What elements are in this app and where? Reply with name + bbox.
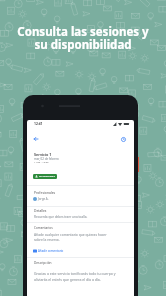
button[interactable]: Atrás (31, 134, 40, 143)
staticText: 12:41 (34, 121, 43, 125)
staticText: SER DISPONIBLE (39, 175, 55, 178)
button[interactable]: Añadir comentario (33, 249, 64, 253)
staticText: Servicio 1 (34, 152, 52, 157)
staticText: 11:00 - 12:00 (34, 160, 49, 163)
staticText: Detalles (34, 208, 47, 212)
staticText: Descripción (34, 261, 52, 265)
staticText: Jorge A. (38, 197, 49, 201)
button[interactable]: Jorge A. (33, 197, 49, 201)
staticText: Consulta las sesiones y su disponibilida… (17, 24, 149, 52)
button[interactable]: SER DISPONIBLE (33, 174, 57, 179)
staticText: Recuerda que debes traer una toalla. (34, 215, 88, 219)
staticText: Gracias a este servicio tonificarás todo… (34, 271, 116, 282)
staticText: Comentarios (34, 226, 53, 230)
staticText: mar, 02 de febrero (34, 157, 59, 161)
button[interactable]: Historial (118, 134, 128, 144)
staticText: Añade cualquier comentario que quieras h… (34, 232, 107, 242)
staticText: Añadir comentario (38, 249, 64, 253)
staticText: Profesionales (34, 190, 56, 195)
